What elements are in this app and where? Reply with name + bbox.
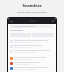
button[interactable]: Search bbox=[10, 25, 54, 28]
button[interactable] bbox=[8, 49, 56, 54]
button[interactable] bbox=[8, 66, 56, 71]
staticText: synchronized and organized bbox=[3, 11, 61, 14]
button[interactable] bbox=[8, 39, 56, 44]
button[interactable] bbox=[8, 56, 56, 61]
button[interactable] bbox=[8, 44, 56, 49]
button[interactable] bbox=[8, 61, 56, 66]
staticText: Seamless bbox=[4, 3, 60, 9]
